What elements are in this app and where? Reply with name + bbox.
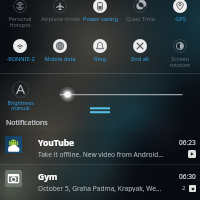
staticText: Mobile data	[44, 55, 76, 63]
button[interactable]: -RONNIE-2	[0, 39, 40, 63]
staticText: Quiet Time	[126, 15, 155, 23]
staticText: 2	[182, 184, 186, 192]
staticText: 06:30	[179, 172, 196, 181]
staticText: YouTube	[38, 137, 75, 149]
staticText: Notifications	[6, 118, 48, 128]
button[interactable]: Brightness mode	[1, 81, 39, 112]
staticText: End all	[131, 55, 149, 63]
staticText: Take it offline. New video from Android…	[38, 150, 164, 158]
staticText: Brightness manual	[7, 99, 34, 112]
button[interactable]: Expand panel	[90, 107, 110, 114]
staticText: Ring	[94, 55, 106, 63]
button[interactable]: Airplane mode	[40, 0, 80, 23]
button[interactable]: GPS	[160, 0, 200, 23]
button[interactable]: Screen rotation	[160, 39, 200, 68]
button[interactable]: Mobile data	[40, 39, 80, 63]
button[interactable]: Gym	[0, 165, 200, 198]
button[interactable]: Personal Hotspot	[0, 0, 40, 28]
staticText: Screen rotation	[160, 55, 200, 68]
button[interactable]: Ring	[80, 39, 120, 63]
staticText: Personal Hotspot	[0, 15, 40, 28]
staticText: Gym	[38, 171, 58, 183]
button[interactable]: YouTube	[0, 131, 200, 164]
button[interactable]: Quiet Time	[120, 0, 160, 23]
staticText: October 5, Graha Padma, Krapyak, We…	[38, 184, 162, 192]
button[interactable]: End all	[120, 39, 160, 63]
staticText: GPS	[175, 15, 186, 23]
staticText: 06:23	[179, 138, 196, 147]
button[interactable]: Power saving	[80, 0, 120, 23]
staticText: Airplane mode	[41, 15, 80, 23]
staticText: Power saving	[83, 15, 118, 23]
staticText: -RONNIE-2	[6, 55, 35, 63]
button[interactable]: Brightness slider	[50, 86, 194, 103]
